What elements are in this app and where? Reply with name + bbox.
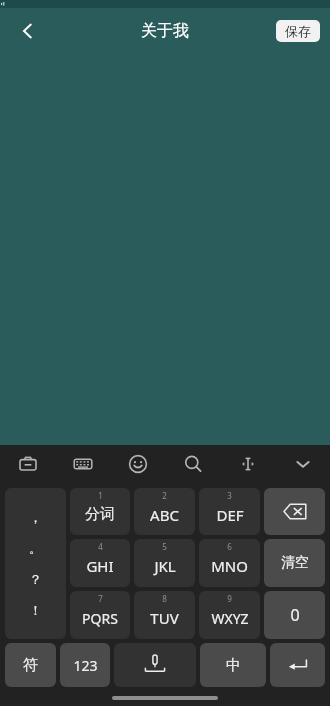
staticText: 1 — [98, 490, 103, 501]
button[interactable]: Keyboard layout — [55, 445, 110, 483]
staticText: 123 — [73, 656, 98, 675]
staticText: 分词 — [85, 505, 115, 524]
button[interactable]: 6 — [199, 539, 260, 587]
staticText: 中 — [226, 656, 241, 675]
staticText: JKL — [154, 556, 176, 576]
staticText: 3 — [227, 490, 232, 501]
button[interactable]: 1 — [70, 488, 130, 535]
staticText: PQRS — [82, 609, 118, 628]
staticText: GHI — [86, 556, 114, 576]
button[interactable]: Delete — [264, 488, 325, 535]
staticText: 9 — [227, 593, 232, 604]
staticText: 7 — [98, 593, 103, 604]
button[interactable]: Enter — [270, 643, 325, 687]
button[interactable]: 5 — [134, 539, 195, 587]
staticText: 5 — [162, 541, 167, 552]
staticText: 4 — [98, 541, 103, 552]
button[interactable]: 0 — [264, 591, 325, 639]
staticText: 6 — [227, 541, 232, 552]
button[interactable]: Search — [165, 445, 220, 483]
button[interactable]: Emoji — [110, 445, 165, 483]
button[interactable]: 8 — [134, 591, 195, 639]
button[interactable]: ， — [5, 488, 66, 639]
staticText: ？ — [29, 571, 42, 587]
staticText: 清空 — [281, 554, 309, 572]
button[interactable]: 9 — [199, 591, 260, 639]
staticText: WXYZ — [211, 609, 249, 628]
staticText: 符 — [23, 656, 38, 675]
staticText: 。 — [29, 540, 42, 556]
button[interactable]: 保存 — [276, 20, 320, 42]
button[interactable]: 清空 — [264, 539, 325, 587]
staticText: 8 — [162, 593, 167, 604]
button[interactable]: Move cursor — [220, 445, 275, 483]
staticText: 2 — [162, 490, 167, 501]
button[interactable]: Clipboard — [0, 445, 55, 483]
staticText: ， — [29, 509, 42, 525]
staticText: ！ — [29, 602, 42, 618]
button[interactable]: 符 — [5, 643, 56, 687]
button[interactable]: 3 — [199, 488, 260, 535]
button[interactable]: 2 — [134, 488, 195, 535]
staticText: 保存 — [285, 23, 311, 39]
staticText: DEF — [216, 505, 244, 525]
staticText: 0 — [290, 604, 300, 626]
staticText: TUV — [150, 608, 179, 628]
button[interactable]: Voice input — [114, 643, 196, 687]
staticText: ABC — [150, 505, 179, 525]
button[interactable]: Hide keyboard — [275, 445, 330, 483]
button[interactable]: Back — [8, 11, 48, 51]
button[interactable]: 123 — [60, 643, 110, 687]
button[interactable]: 中 — [200, 643, 266, 687]
staticText: 关于我 — [141, 21, 189, 41]
staticText: MNO — [211, 556, 248, 576]
button[interactable]: 4 — [70, 539, 130, 587]
button[interactable]: 7 — [70, 591, 130, 639]
